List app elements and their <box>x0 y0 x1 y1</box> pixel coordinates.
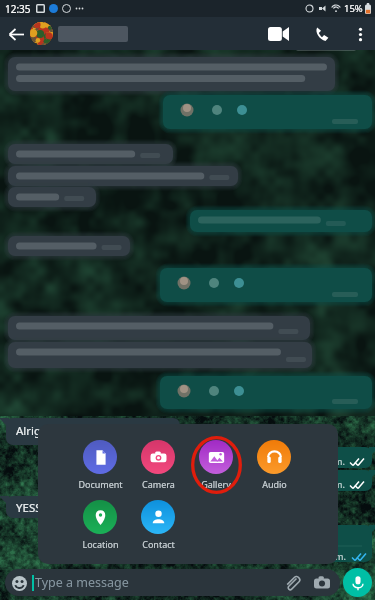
staticText: Camera <box>142 478 175 490</box>
staticText: Document <box>78 478 123 490</box>
staticText: Alrig' <box>16 423 44 439</box>
other: Gallery highlight <box>191 436 242 494</box>
button[interactable]: Attach <box>279 570 305 596</box>
button[interactable]: Contact <box>131 500 185 550</box>
staticText: YESS <box>16 500 42 516</box>
button[interactable]: Back <box>3 21 29 47</box>
staticText: m. <box>335 550 346 562</box>
button[interactable]: Location <box>73 500 127 550</box>
staticText: Contact <box>142 538 175 550</box>
button[interactable]: More options <box>347 21 373 47</box>
staticText: Gallery <box>201 478 231 490</box>
button[interactable]: Video call <box>263 19 293 49</box>
staticText: Location <box>82 538 119 550</box>
staticText: 15% <box>344 2 363 15</box>
staticText: Audio <box>262 478 287 490</box>
staticText: m. <box>334 455 345 467</box>
button[interactable]: Call <box>307 19 337 49</box>
button[interactable]: Camera <box>131 440 185 490</box>
staticText: m. <box>334 478 345 490</box>
staticText: 12:35 <box>5 2 31 16</box>
button[interactable]: Gallery <box>189 440 243 490</box>
button[interactable]: Audio <box>247 440 301 490</box>
button[interactable]: Emoji <box>5 569 340 596</box>
staticText: Type a message <box>35 574 129 591</box>
button[interactable]: Emoji <box>11 575 27 591</box>
button[interactable]: Camera <box>309 570 335 596</box>
button[interactable]: Document <box>73 440 127 490</box>
button[interactable]: Voice message <box>343 568 372 597</box>
